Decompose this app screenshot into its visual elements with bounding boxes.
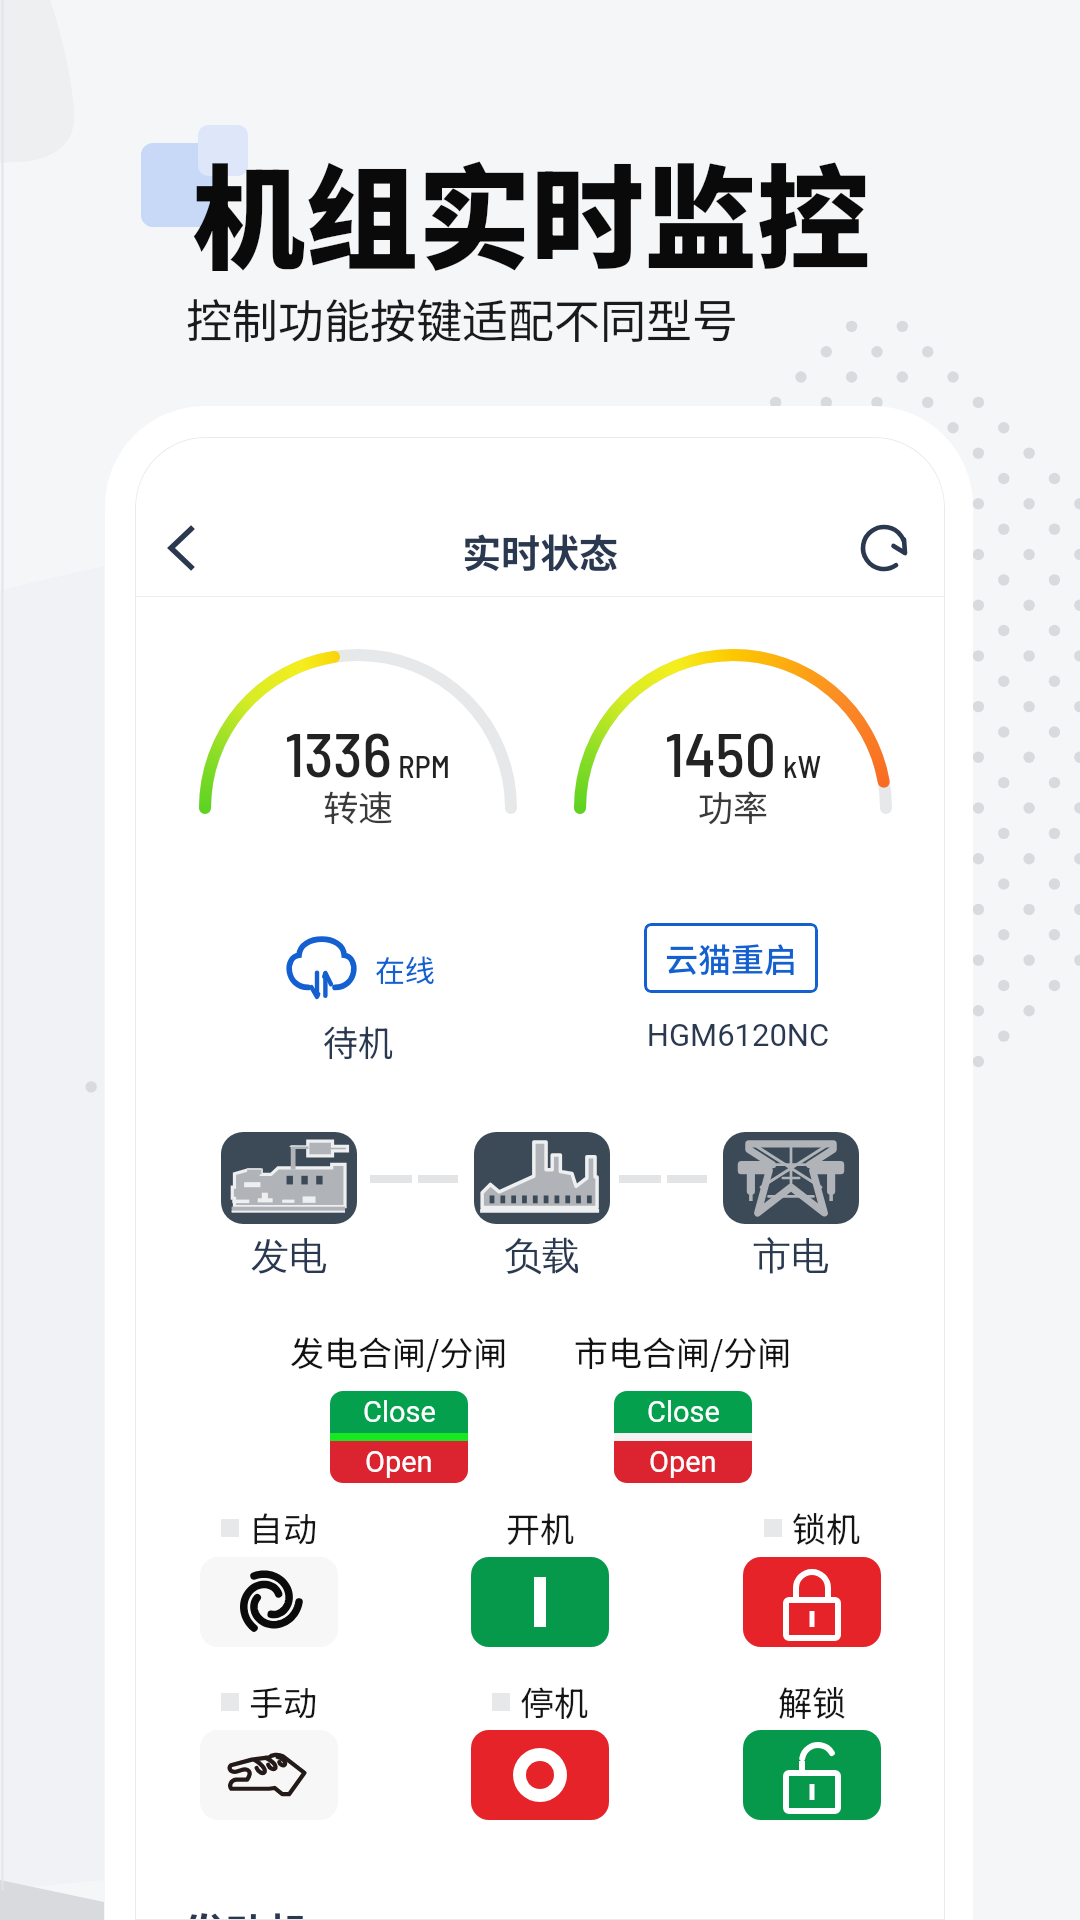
staticText: Close: [647, 1395, 720, 1429]
staticText: RPM: [398, 747, 451, 784]
staticText: 1450: [665, 715, 777, 789]
staticText: 转速: [199, 780, 517, 831]
staticText: Close: [363, 1395, 436, 1429]
button[interactable]: Online status: [281, 932, 436, 990]
button[interactable]: Lock: [743, 1557, 881, 1647]
staticText: 机组实时监控: [192, 129, 870, 293]
button[interactable]: Open: [614, 1441, 752, 1483]
staticText: 控制功能按键适配不同型号: [186, 285, 738, 352]
button[interactable]: Close: [330, 1391, 468, 1433]
button[interactable]: 云猫重启: [644, 923, 818, 993]
button[interactable]: Auto mode: [200, 1557, 338, 1647]
staticText: kW: [783, 747, 822, 784]
button[interactable]: 发电: [221, 1132, 357, 1224]
button[interactable]: Close: [614, 1391, 752, 1433]
button[interactable]: Open: [330, 1441, 468, 1483]
button[interactable]: Unlock: [743, 1730, 881, 1820]
staticText: 功率: [574, 780, 892, 831]
button[interactable]: Manual mode: [200, 1730, 338, 1820]
staticText: 市电合闸/分闸: [574, 1327, 792, 1376]
staticText: 云猫重启: [665, 934, 797, 982]
button[interactable]: Start: [471, 1557, 609, 1647]
button[interactable]: Back: [151, 518, 211, 578]
staticText: Open: [365, 1445, 433, 1479]
staticText: 发电: [251, 1232, 327, 1280]
staticText: HGM6120NC: [610, 1017, 866, 1053]
staticText: 发动机: [183, 1900, 310, 1920]
staticText: 在线: [375, 947, 435, 990]
button[interactable]: Stop: [471, 1730, 609, 1820]
staticText: 锁机: [792, 1503, 860, 1552]
staticText: Open: [649, 1445, 717, 1479]
button[interactable]: 市电: [723, 1132, 859, 1224]
staticText: 自动: [249, 1503, 317, 1552]
staticText: 市电: [753, 1232, 829, 1280]
staticText: 手动: [249, 1677, 317, 1726]
staticText: 1336: [285, 715, 392, 789]
staticText: 实时状态: [135, 523, 945, 579]
button[interactable]: Refresh: [854, 518, 914, 578]
staticText: 负载: [504, 1232, 580, 1280]
staticText: 解锁: [778, 1677, 846, 1726]
staticText: 发电合闸/分闸: [290, 1327, 508, 1376]
staticText: 开机: [506, 1503, 574, 1552]
staticText: 停机: [520, 1677, 588, 1726]
button[interactable]: 负载: [474, 1132, 610, 1224]
staticText: 待机: [283, 1015, 433, 1066]
